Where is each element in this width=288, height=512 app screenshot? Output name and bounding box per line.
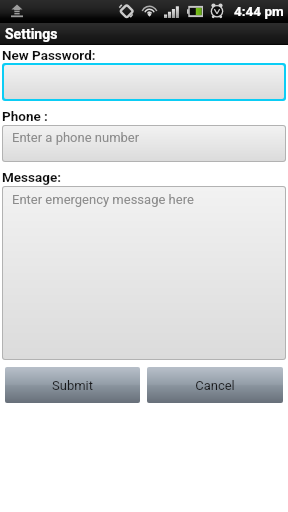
staticText: Enter emergency message here xyxy=(12,192,194,207)
staticText: Phone : xyxy=(2,108,48,124)
other: Alarm set xyxy=(210,3,224,18)
staticText: 4:44 pm xyxy=(234,3,284,19)
staticText: Enter a phone number xyxy=(12,130,140,145)
other: Auto-rotate xyxy=(119,4,133,18)
staticText: Submit xyxy=(52,378,93,393)
staticText: Message: xyxy=(2,169,62,185)
staticText: Settings xyxy=(5,26,58,42)
other: Battery xyxy=(187,5,203,18)
staticText: New Password: xyxy=(2,47,96,63)
other: Mobile signal xyxy=(164,5,179,18)
staticText: Cancel xyxy=(195,378,235,393)
button[interactable]: Enter emergency message here xyxy=(3,187,285,359)
button[interactable]: Cancel xyxy=(147,367,283,403)
button[interactable]: New password field xyxy=(4,65,284,99)
button[interactable]: Submit xyxy=(5,367,140,403)
other: Wi-Fi signal xyxy=(143,4,156,17)
button[interactable]: Enter a phone number xyxy=(3,126,285,161)
other: Upload in progress xyxy=(11,4,23,19)
